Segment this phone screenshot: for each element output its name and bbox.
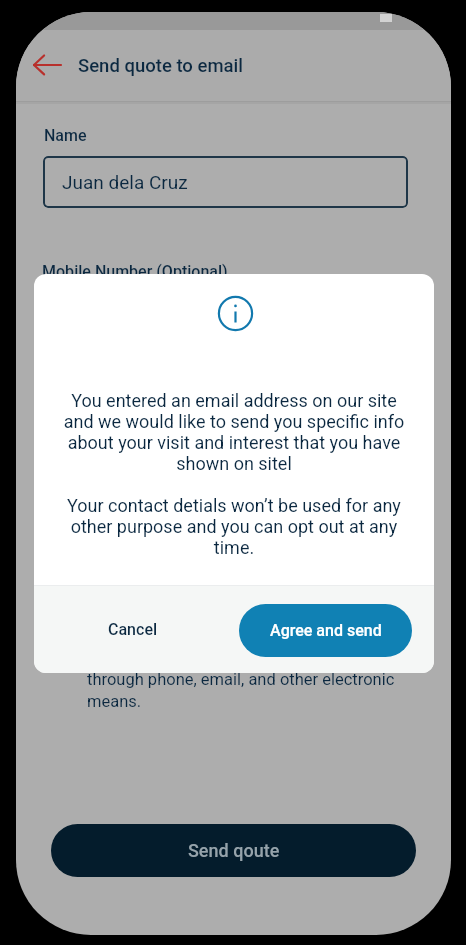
- button[interactable]: Send qoute: [51, 824, 416, 877]
- button[interactable]: Agree and send: [239, 604, 412, 657]
- staticText: Send qoute: [188, 840, 280, 861]
- staticText: Agree and send: [270, 621, 382, 640]
- button[interactable]: Juan dela Cruz: [43, 156, 408, 208]
- staticText: through phone, email, and other electron…: [87, 670, 417, 711]
- button[interactable]: Cancel: [91, 605, 174, 654]
- staticText: You entered an email address on our site…: [56, 390, 412, 558]
- staticText: Name: [44, 126, 87, 145]
- staticText: Send quote to email: [78, 55, 244, 77]
- staticText: Cancel: [108, 620, 158, 639]
- staticText: Juan dela Cruz: [62, 171, 188, 193]
- staticText: Mobile Number (Optional): [42, 262, 228, 281]
- button[interactable]: Back: [24, 40, 76, 92]
